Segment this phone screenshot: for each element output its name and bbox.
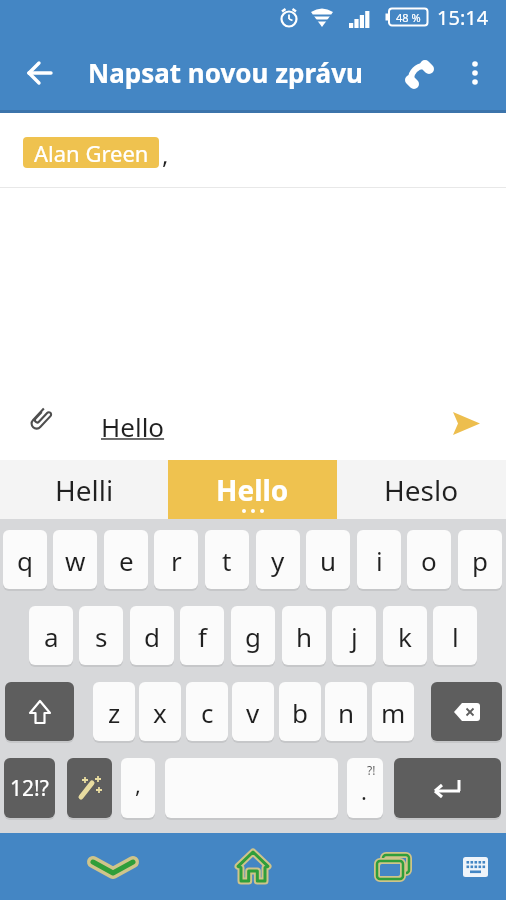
staticText: . [361, 776, 367, 806]
button[interactable]: p [458, 530, 502, 589]
button[interactable]: g [231, 606, 275, 665]
button[interactable]: e [104, 530, 148, 589]
staticText: o [421, 543, 437, 578]
button[interactable] [225, 833, 281, 900]
button[interactable] [16, 33, 64, 113]
button[interactable] [452, 33, 498, 113]
staticText: n [338, 695, 355, 730]
staticText: ?! [367, 762, 376, 778]
staticText: g [245, 619, 261, 654]
staticText: Helli [55, 471, 114, 509]
staticText: , [162, 138, 169, 171]
staticText: r [171, 543, 182, 578]
button[interactable]: v [232, 682, 274, 741]
staticText: k [398, 619, 412, 654]
staticText: y [271, 543, 285, 578]
staticText: d [144, 619, 160, 654]
button[interactable]: 12!? [4, 758, 55, 818]
staticText: s [95, 619, 108, 654]
button[interactable]: d [130, 606, 174, 665]
button[interactable] [67, 758, 112, 818]
staticText: a [44, 619, 59, 654]
button[interactable]: l [433, 606, 477, 665]
staticText: 12!? [10, 774, 49, 803]
button[interactable]: ?! [347, 758, 383, 818]
button[interactable]: , [121, 758, 155, 818]
staticText: w [65, 543, 86, 578]
button[interactable] [394, 758, 501, 818]
staticText: 48 % [396, 10, 421, 25]
staticText: e [119, 543, 134, 578]
button[interactable] [431, 682, 502, 741]
button[interactable]: y [256, 530, 300, 589]
staticText: b [292, 695, 308, 730]
button[interactable]: i [357, 530, 401, 589]
staticText: 15:14 [437, 4, 489, 31]
button[interactable]: Hello [168, 460, 337, 519]
staticText: z [108, 695, 121, 730]
staticText: l [452, 619, 459, 654]
staticText: c [201, 695, 214, 730]
staticText: x [153, 695, 167, 730]
button[interactable]: z [93, 682, 135, 741]
staticText: t [222, 543, 232, 578]
staticText: Napsat novou zprávu [88, 55, 363, 90]
staticText: Alan Green [34, 138, 149, 168]
button[interactable]: q [3, 530, 47, 589]
staticText: Hello [101, 409, 165, 444]
button[interactable]: t [205, 530, 249, 589]
button[interactable]: j [332, 606, 376, 665]
button[interactable]: x [139, 682, 181, 741]
button[interactable] [438, 399, 494, 447]
button[interactable]: u [306, 530, 350, 589]
button[interactable]: s [79, 606, 123, 665]
button[interactable]: Helli [0, 460, 168, 519]
staticText: i [376, 543, 383, 578]
button[interactable]: w [53, 530, 97, 589]
staticText: Hello [216, 471, 289, 509]
button[interactable]: k [383, 606, 427, 665]
button[interactable]: f [180, 606, 224, 665]
staticText: h [296, 619, 313, 654]
button[interactable]: r [154, 530, 198, 589]
staticText: p [472, 543, 488, 578]
button[interactable]: o [407, 530, 451, 589]
staticText: , [135, 769, 141, 799]
staticText: j [351, 619, 358, 654]
button[interactable]: Heslo [337, 460, 506, 519]
button[interactable]: b [279, 682, 321, 741]
staticText: v [246, 695, 260, 730]
button[interactable]: m [372, 682, 414, 741]
staticText: m [381, 695, 406, 730]
button[interactable] [452, 833, 498, 900]
button[interactable] [5, 682, 74, 741]
button[interactable]: c [186, 682, 228, 741]
staticText: f [198, 619, 207, 654]
staticText: q [17, 543, 33, 578]
button[interactable]: n [325, 682, 367, 741]
button[interactable]: a [29, 606, 73, 665]
button[interactable]: Alan Green [23, 137, 159, 168]
staticText: u [320, 543, 337, 578]
staticText: Heslo [384, 471, 459, 509]
button[interactable] [14, 392, 66, 448]
button[interactable]: h [282, 606, 326, 665]
button[interactable] [85, 833, 141, 900]
button[interactable] [365, 833, 421, 900]
button[interactable] [394, 33, 442, 113]
